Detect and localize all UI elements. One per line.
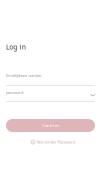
button[interactable]: Email/phone number [6,73,95,86]
button[interactable]: Remember Password [31,139,81,145]
staticText: Email/phone number [6,73,42,78]
staticText: Confirm [42,123,59,128]
staticText: password [6,90,23,95]
button[interactable]: password [6,90,95,102]
staticText: Remember Password [37,139,75,145]
button[interactable]: Confirm [6,119,95,132]
staticText: Log in [6,43,26,51]
